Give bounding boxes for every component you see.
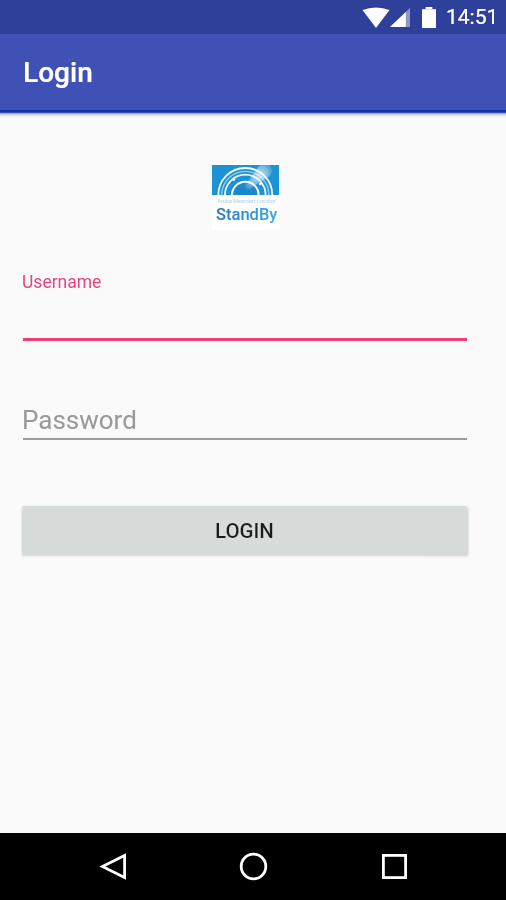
staticText: Aruba Meardert Locator	[217, 198, 276, 204]
staticText: Login	[23, 56, 93, 89]
button[interactable]: Home	[218, 833, 288, 900]
staticText: Password	[22, 405, 137, 435]
staticText: StandBy	[216, 205, 278, 224]
button[interactable]: Recents	[359, 833, 429, 900]
staticText: 14:51	[446, 5, 499, 30]
staticText: Username	[22, 272, 102, 293]
button[interactable]: Password	[23, 399, 467, 440]
button[interactable]: LOGIN	[22, 506, 467, 555]
button[interactable]: Username	[23, 266, 467, 341]
staticText: LOGIN	[215, 519, 274, 543]
button[interactable]: Back	[78, 833, 148, 900]
